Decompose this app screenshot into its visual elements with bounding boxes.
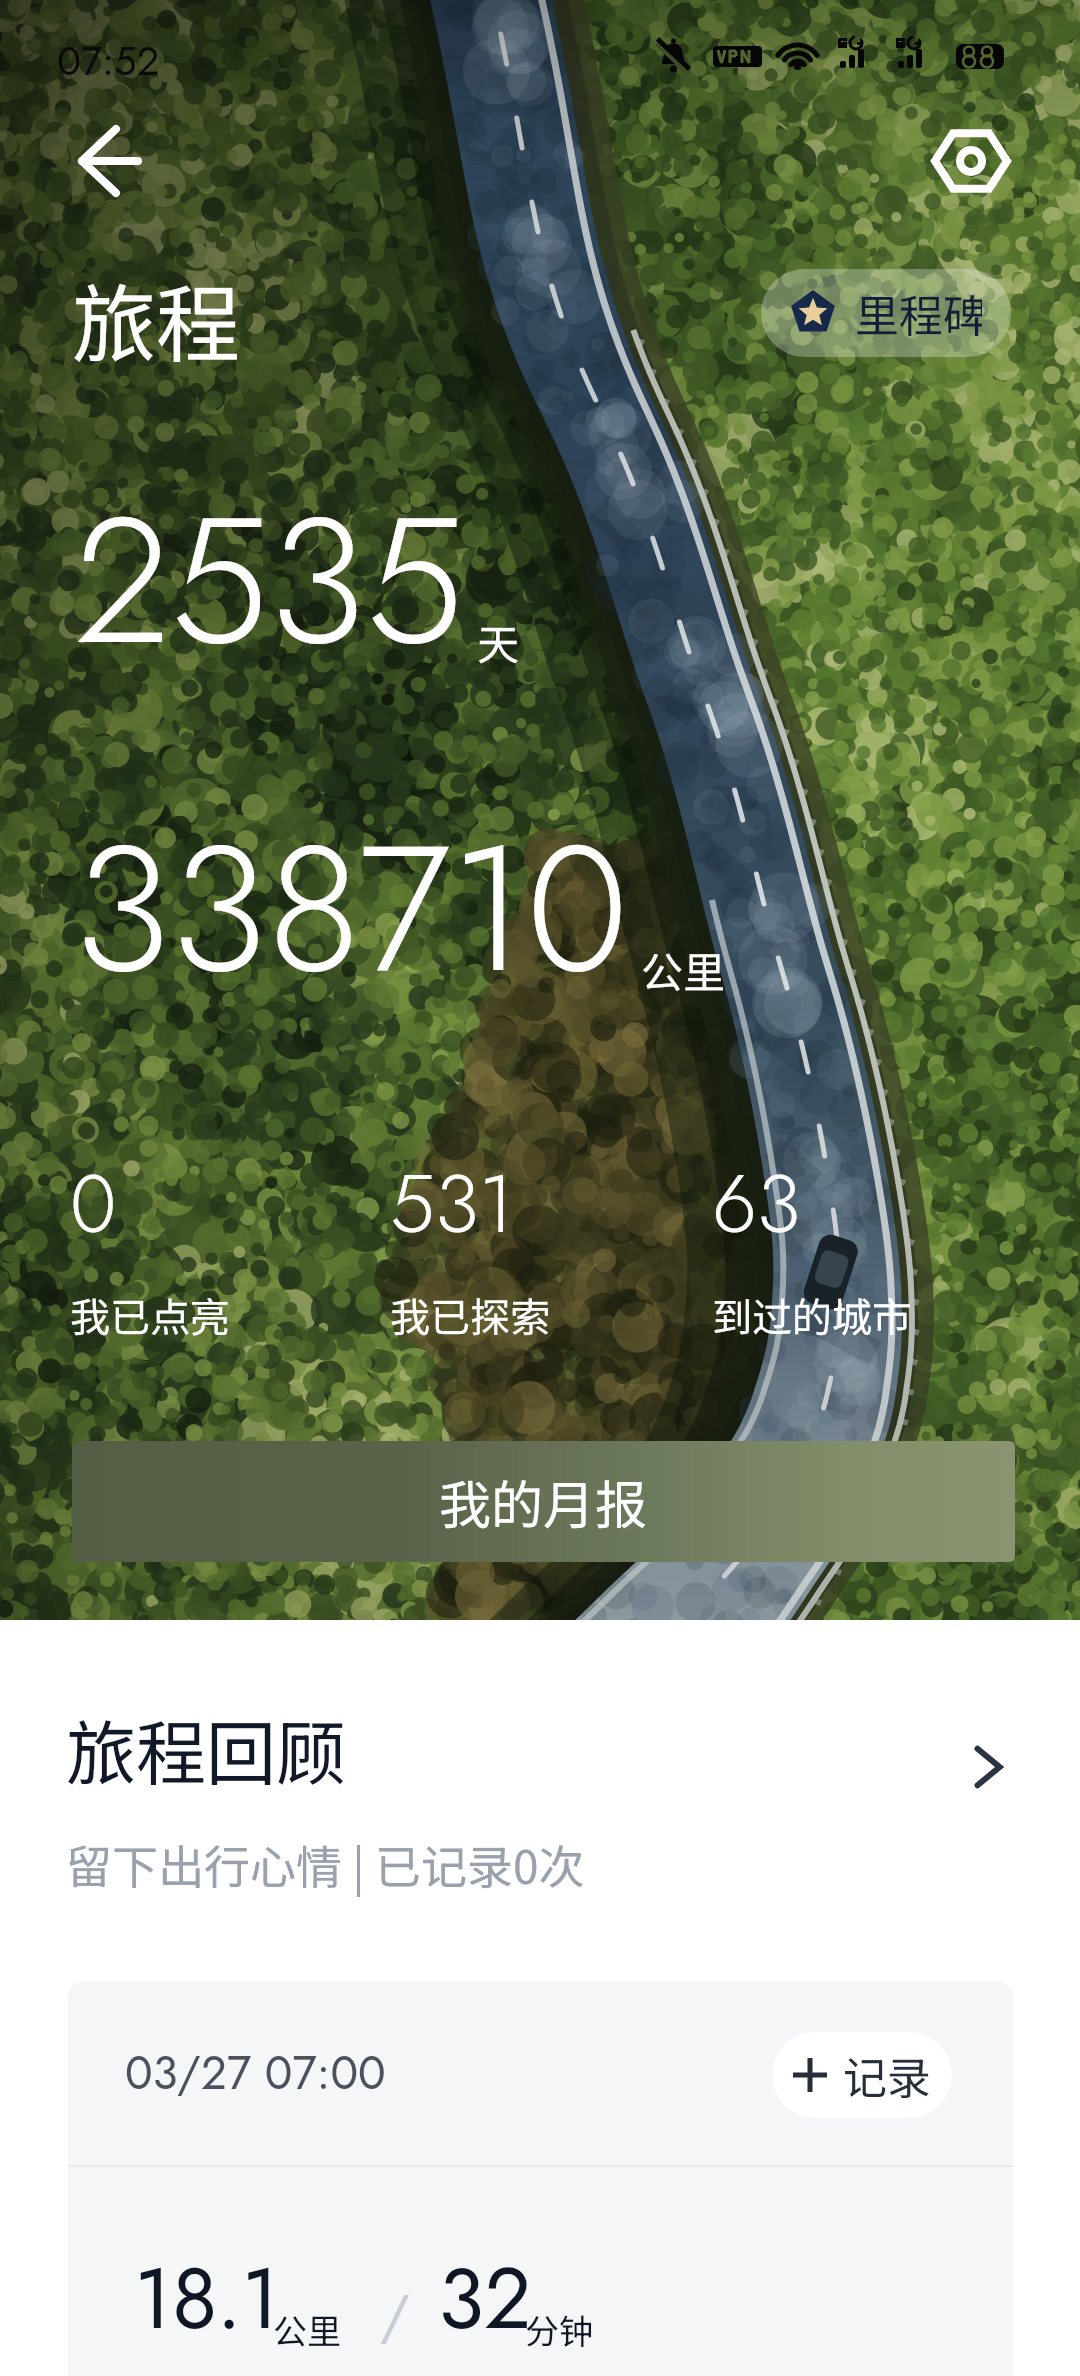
- staticText: 里程碑: [855, 281, 982, 345]
- staticText: 记录: [843, 2043, 931, 2107]
- staticText: 2535: [74, 454, 465, 708]
- staticText: 到过的城市: [712, 1286, 912, 1344]
- staticText: 公里: [273, 2305, 341, 2354]
- button[interactable]: 我的月报: [72, 1441, 1015, 1562]
- button[interactable]: Back: [42, 105, 162, 217]
- button[interactable]: 里程碑: [761, 269, 1011, 357]
- staticText: /: [380, 2273, 410, 2357]
- staticText: 07:52: [57, 32, 160, 90]
- staticText: 分钟: [525, 2305, 593, 2354]
- button[interactable]: Settings: [925, 119, 1017, 203]
- staticText: 我已点亮: [70, 1286, 230, 1344]
- staticText: 531: [390, 1146, 514, 1262]
- staticText: 我已探索: [390, 1286, 550, 1344]
- staticText: 留下出行心情 | 已记录0次: [66, 1831, 585, 1898]
- button[interactable]: 记录: [772, 2032, 952, 2118]
- staticText: 公里: [641, 939, 726, 1000]
- staticText: 旅程: [72, 258, 241, 380]
- staticText: 18.1: [134, 2238, 280, 2359]
- staticText: 0: [70, 1146, 117, 1262]
- staticText: 338710: [74, 782, 629, 1036]
- staticText: 天: [477, 611, 520, 672]
- staticText: 32: [438, 2238, 532, 2359]
- staticText: 63: [712, 1146, 801, 1262]
- staticText: 03/27 07:00: [125, 2040, 386, 2106]
- staticText: 我的月报: [439, 1464, 648, 1539]
- button[interactable]: 旅程回顾: [0, 1698, 1080, 1904]
- staticText: 旅程回顾: [66, 1698, 346, 1799]
